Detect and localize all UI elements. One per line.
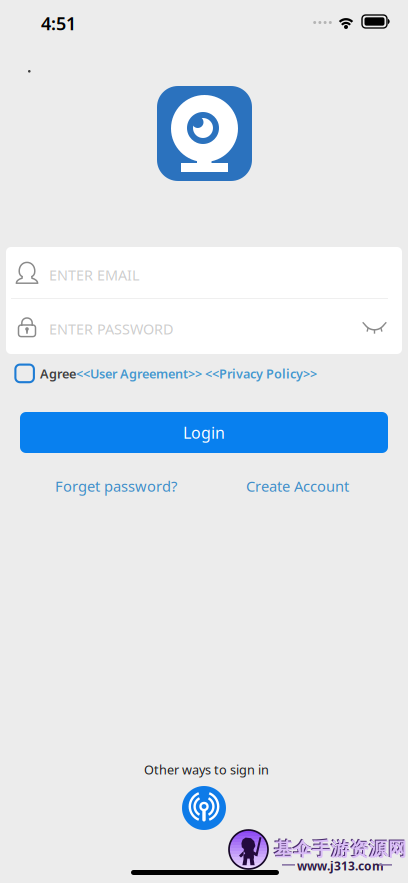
button[interactable]: Show password	[357, 314, 392, 348]
staticText: www.j313.com	[297, 858, 384, 874]
staticText: 基伞手游资源网	[273, 837, 406, 860]
staticText: Other ways to sign in	[144, 761, 269, 778]
button[interactable]: Create Account	[239, 471, 356, 501]
staticText: 基伞手游资源网	[274, 838, 407, 861]
button[interactable]: Agree to the user agreement and privacy …	[9, 359, 40, 388]
button[interactable]: Sign in another way	[182, 786, 226, 830]
staticText: Agree	[40, 365, 76, 382]
staticText: <<User Agreement>> <<Privacy Policy>>	[76, 365, 317, 382]
staticText: ENTER PASSWORD	[49, 319, 174, 339]
button[interactable]: Agree	[40, 365, 317, 382]
staticText: 4:51	[41, 11, 76, 35]
button[interactable]: Login	[20, 412, 388, 453]
staticText: Forget password?	[55, 476, 177, 496]
staticText: ENTER EMAIL	[49, 265, 140, 285]
button[interactable]: Forget password?	[48, 471, 184, 501]
staticText: Login	[183, 422, 225, 443]
staticText: Create Account	[246, 476, 349, 496]
